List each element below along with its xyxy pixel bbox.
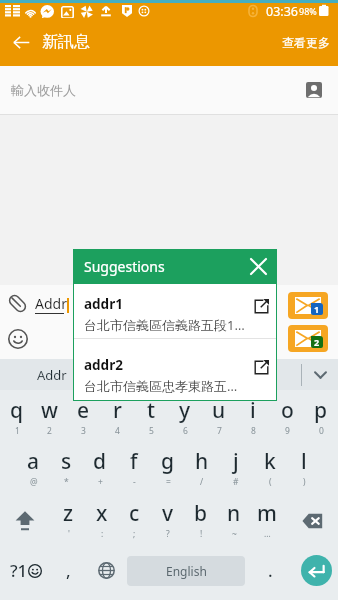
button[interactable]: h bbox=[185, 443, 219, 496]
button[interactable]: addr2 bbox=[73, 339, 277, 401]
staticText: / bbox=[200, 476, 204, 488]
button[interactable]: a bbox=[17, 443, 50, 496]
button[interactable]: Emoji bbox=[0, 321, 35, 357]
staticText: 03:36 bbox=[266, 3, 298, 18]
staticText: u bbox=[212, 396, 226, 425]
staticText: ~ bbox=[232, 528, 237, 540]
button[interactable]: q bbox=[0, 390, 33, 443]
staticText: n bbox=[227, 499, 241, 528]
staticText: r bbox=[113, 396, 122, 425]
staticText: w bbox=[41, 396, 58, 425]
staticText: 4 bbox=[115, 425, 120, 437]
staticText: 98% bbox=[299, 5, 317, 17]
staticText: o bbox=[281, 396, 294, 425]
staticText: a bbox=[27, 447, 40, 476]
staticText: ?1 bbox=[10, 559, 28, 582]
staticText: z bbox=[63, 499, 74, 528]
staticText: f bbox=[130, 447, 138, 476]
button[interactable]: l bbox=[287, 443, 321, 496]
staticText: 3 bbox=[81, 425, 86, 437]
staticText: ) bbox=[303, 476, 306, 488]
button[interactable]: y bbox=[168, 390, 202, 443]
staticText: … bbox=[264, 528, 271, 540]
staticText: , bbox=[66, 559, 71, 582]
staticText: 輸入收件人 bbox=[11, 82, 76, 98]
staticText: - bbox=[133, 476, 136, 488]
button[interactable]: g bbox=[151, 443, 185, 496]
staticText: . bbox=[268, 559, 273, 582]
button[interactable]: b bbox=[184, 496, 217, 549]
staticText: Added bbox=[183, 366, 223, 384]
button[interactable]: e bbox=[66, 390, 100, 443]
button[interactable]: r bbox=[100, 390, 134, 443]
button[interactable]: o bbox=[270, 390, 304, 443]
staticText: addr2 bbox=[84, 356, 123, 374]
button[interactable]: Addr bbox=[0, 359, 104, 390]
button[interactable]: Backspace bbox=[283, 496, 338, 549]
staticText: g bbox=[161, 447, 175, 476]
button[interactable]: Shift bbox=[0, 496, 52, 549]
staticText: c bbox=[129, 499, 140, 528]
staticText: k bbox=[264, 447, 276, 476]
button[interactable]: Send with SIM 1 bbox=[288, 292, 328, 319]
button[interactable]: 查看更多 bbox=[274, 21, 338, 64]
button[interactable]: m bbox=[250, 496, 283, 549]
staticText: 查看更多 bbox=[282, 35, 330, 50]
staticText: 7 bbox=[217, 425, 222, 437]
button[interactable]: s bbox=[50, 443, 83, 496]
button[interactable]: Added bbox=[105, 359, 301, 390]
button[interactable]: Contacts bbox=[294, 70, 334, 110]
button[interactable]: t bbox=[134, 390, 168, 443]
staticText: e bbox=[77, 396, 90, 425]
button[interactable]: , bbox=[51, 549, 86, 600]
button[interactable]: z bbox=[52, 496, 85, 549]
button[interactable]: v bbox=[151, 496, 184, 549]
button[interactable]: d bbox=[83, 443, 117, 496]
button[interactable]: j bbox=[219, 443, 253, 496]
staticText: 台北市信義區忠孝東路五… bbox=[84, 377, 238, 395]
button[interactable]: n bbox=[217, 496, 250, 549]
staticText: 0 bbox=[319, 425, 324, 437]
staticText: p bbox=[314, 396, 328, 425]
staticText: 2 bbox=[47, 425, 52, 437]
button[interactable]: Close bbox=[239, 249, 277, 284]
staticText: y bbox=[179, 396, 191, 425]
staticText: 9 bbox=[285, 425, 290, 437]
button[interactable]: Back bbox=[0, 18, 42, 66]
other: Open bbox=[245, 352, 277, 382]
staticText: 1 bbox=[15, 425, 20, 437]
staticText: 6 bbox=[183, 425, 188, 437]
staticText: b bbox=[194, 499, 208, 528]
staticText: i bbox=[250, 396, 256, 425]
staticText: 1 bbox=[314, 303, 320, 315]
staticText: English bbox=[166, 563, 207, 579]
staticText: = bbox=[166, 476, 171, 488]
staticText: Addr bbox=[37, 366, 67, 384]
staticText: # bbox=[233, 476, 239, 488]
button[interactable]: addr1 bbox=[73, 284, 277, 338]
button[interactable]: f bbox=[117, 443, 151, 496]
staticText: Addr bbox=[35, 294, 67, 313]
staticText: s bbox=[61, 447, 72, 476]
button[interactable]: Expand bbox=[302, 359, 338, 390]
staticText: q bbox=[10, 396, 24, 425]
button[interactable]: . bbox=[245, 549, 295, 600]
staticText: addr1 bbox=[84, 295, 123, 313]
staticText: 8 bbox=[251, 425, 256, 437]
button[interactable]: w bbox=[33, 390, 66, 443]
button[interactable]: p bbox=[304, 390, 338, 443]
staticText: 新訊息 bbox=[42, 32, 90, 52]
button[interactable]: k bbox=[253, 443, 287, 496]
button[interactable]: c bbox=[118, 496, 151, 549]
button[interactable]: Send with SIM 2 bbox=[288, 325, 328, 352]
button[interactable]: u bbox=[202, 390, 236, 443]
button[interactable]: i bbox=[236, 390, 270, 443]
button[interactable]: x bbox=[85, 496, 118, 549]
staticText: 2 bbox=[314, 336, 320, 348]
button[interactable]: English bbox=[127, 556, 245, 586]
button[interactable]: Symbols bbox=[0, 549, 51, 600]
button[interactable]: Attach bbox=[0, 285, 35, 321]
staticText: ' bbox=[68, 528, 70, 540]
button[interactable]: Change language bbox=[86, 549, 127, 600]
button[interactable]: Enter bbox=[301, 555, 332, 586]
